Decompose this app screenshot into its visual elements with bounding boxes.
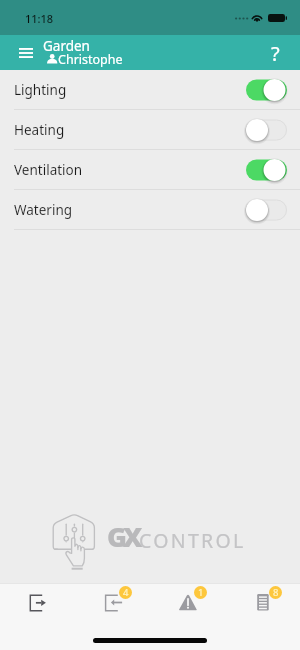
button[interactable]: Log out [0,584,75,622]
button[interactable]: Heating [0,110,300,150]
button[interactable]: Ventilation [0,150,300,190]
button[interactable]: Log in [75,584,150,622]
staticText: GX [107,518,139,555]
staticText: 1 [198,586,204,599]
staticText: CONTROL [139,527,246,554]
staticText: 11:18 [25,11,54,26]
staticText: Heating [14,121,65,139]
button[interactable]: Alarms [150,584,225,622]
button[interactable]: Help [258,36,292,70]
button[interactable]: Open navigation menu [9,36,43,70]
staticText: Christophe [58,51,123,68]
button[interactable]: Event log [225,584,300,622]
staticText: ? [271,40,280,67]
staticText: Lighting [14,81,67,99]
staticText: 8 [273,586,279,599]
button[interactable]: Lighting [0,70,300,110]
staticText: Ventilation [14,161,83,179]
staticText: Watering [14,201,73,219]
button[interactable]: Watering [0,190,300,230]
staticText: 4 [123,586,129,599]
staticText: Garden [43,37,90,55]
